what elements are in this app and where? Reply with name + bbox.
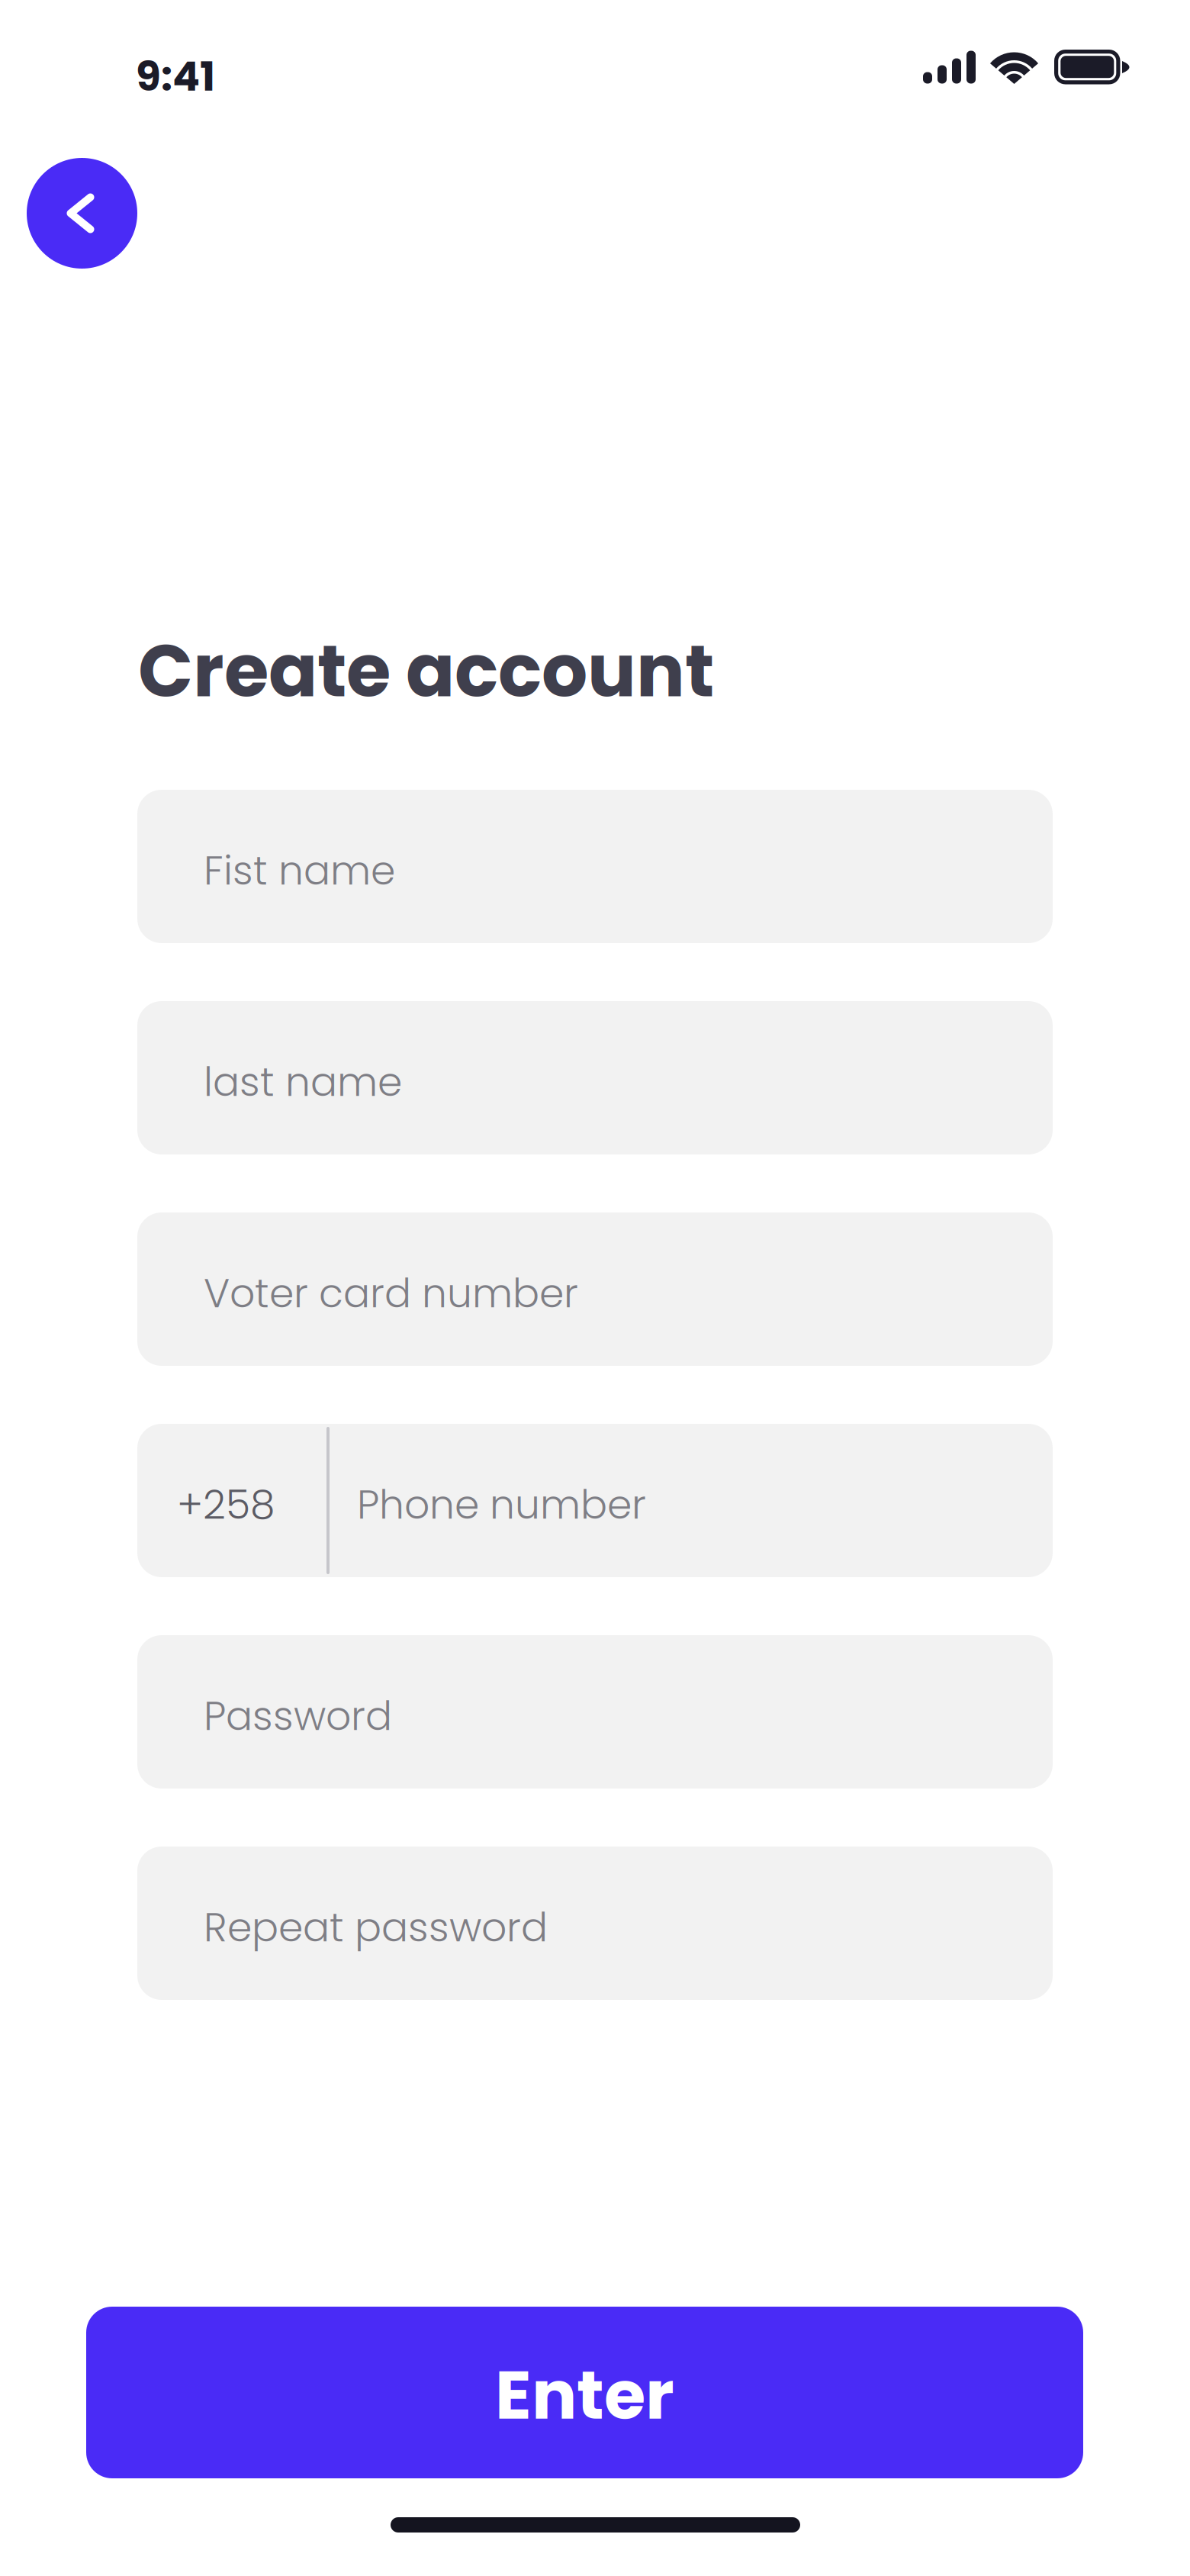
staticText: Voter card number bbox=[204, 1266, 578, 1321]
button[interactable]: Enter bbox=[86, 2307, 1083, 2478]
staticText: Enter bbox=[495, 2348, 674, 2442]
button[interactable]: last name bbox=[137, 1001, 1053, 1154]
staticText: +258 bbox=[177, 1477, 275, 1532]
button[interactable]: Back bbox=[27, 158, 137, 269]
button[interactable]: Fist name bbox=[137, 790, 1053, 943]
button[interactable]: +258 bbox=[137, 1424, 1053, 1577]
staticText: Phone number bbox=[357, 1477, 646, 1532]
staticText: Fist name bbox=[204, 843, 395, 898]
button[interactable]: Voter card number bbox=[137, 1212, 1053, 1366]
staticText: last name bbox=[204, 1054, 402, 1110]
staticText: Repeat password bbox=[204, 1900, 548, 1955]
staticText: Create account bbox=[138, 620, 714, 721]
button[interactable]: Password bbox=[137, 1635, 1053, 1789]
staticText: Password bbox=[204, 1688, 392, 1744]
button[interactable]: Repeat password bbox=[137, 1847, 1053, 2000]
staticText: 9:41 bbox=[136, 48, 215, 105]
